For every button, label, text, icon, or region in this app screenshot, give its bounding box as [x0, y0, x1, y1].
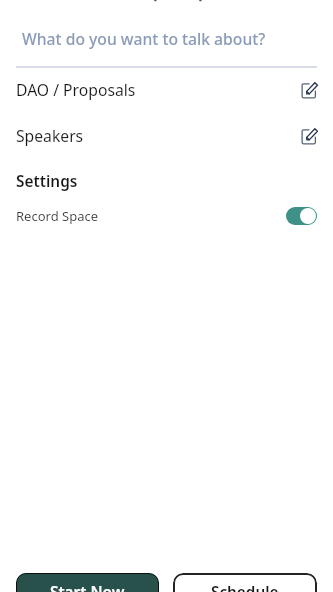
button[interactable]: Record Space toggle [286, 207, 317, 225]
staticText: Schedule [211, 582, 279, 592]
staticText: What do you want to talk about? [22, 28, 266, 49]
staticText: Record Space [16, 207, 99, 225]
button[interactable]: DAO / Proposals [0, 66, 333, 112]
button[interactable]: Speakers [0, 112, 333, 158]
staticText: Settings [16, 171, 78, 192]
button[interactable]: Start Now [16, 573, 159, 592]
staticText: Speakers [16, 125, 84, 146]
button[interactable]: Edit [300, 127, 317, 144]
staticText: Start Now [50, 582, 125, 592]
button[interactable]: Edit [300, 81, 317, 98]
staticText: DAO / Proposals [16, 79, 136, 100]
button[interactable]: Schedule [173, 573, 317, 592]
